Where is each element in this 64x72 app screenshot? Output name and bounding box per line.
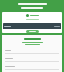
- button[interactable]: [5, 58, 59, 62]
- button[interactable]: [3, 23, 61, 29]
- button[interactable]: Primary action: [26, 30, 39, 33]
- button[interactable]: [5, 66, 59, 70]
- button[interactable]: Primary action: [2, 12, 62, 33]
- button[interactable]: [5, 50, 59, 54]
